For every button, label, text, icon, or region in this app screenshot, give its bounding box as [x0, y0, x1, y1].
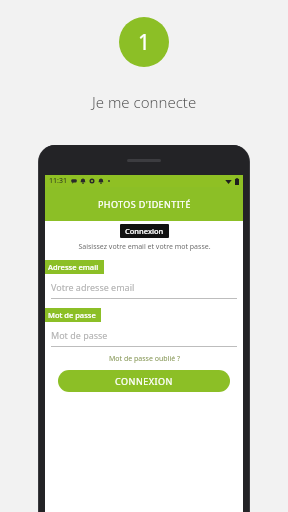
- staticText: Mot de passe: [51, 329, 108, 341]
- staticText: Mot de passe: [48, 310, 96, 320]
- button[interactable]: Mot de passe oublié ?: [45, 354, 243, 364]
- staticText: Adresse email: [48, 262, 99, 272]
- button[interactable]: Votre adresse email: [45, 274, 243, 299]
- staticText: Votre adresse email: [51, 281, 135, 293]
- staticText: 11:31: [49, 176, 67, 186]
- staticText: Je me connecte: [92, 92, 197, 112]
- button[interactable]: Connexion: [120, 224, 169, 238]
- staticText: Saisissez votre email et votre mot passe…: [78, 242, 211, 252]
- button[interactable]: Mot de passe: [45, 322, 243, 347]
- staticText: PHOTOS D'IDENTITÉ: [98, 198, 191, 210]
- staticText: 1: [138, 28, 151, 57]
- staticText: Connexion: [125, 226, 164, 236]
- button[interactable]: CONNEXION: [58, 370, 230, 392]
- staticText: Mot de passe oublié ?: [109, 354, 180, 364]
- staticText: CONNEXION: [115, 375, 173, 387]
